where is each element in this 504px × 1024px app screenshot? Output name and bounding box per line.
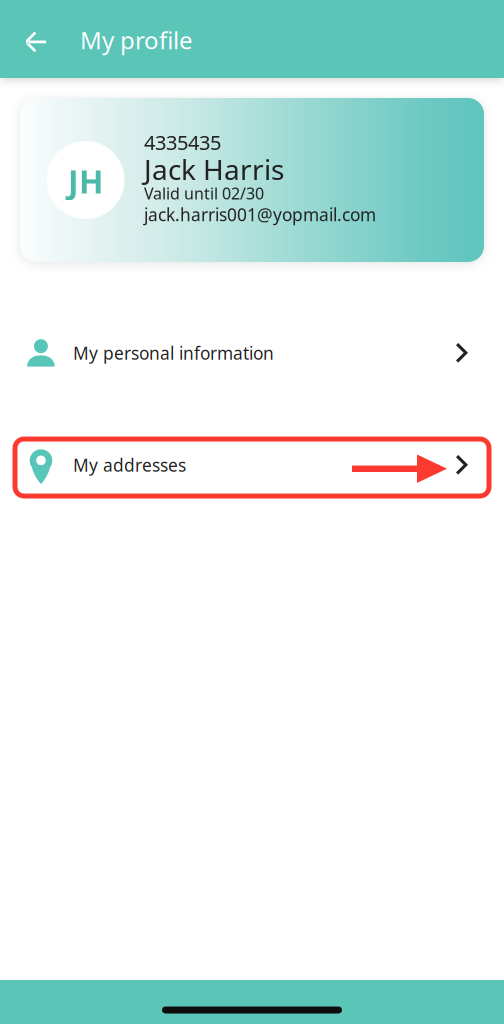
staticText: Valid until 02/30 [144,183,264,204]
staticText: 4335435 [144,129,221,156]
staticText: Jack Harris [144,151,284,188]
button[interactable]: My addresses [0,433,504,497]
button[interactable]: My personal information [0,321,504,385]
staticText: My personal information [73,341,274,364]
staticText: My profile [80,24,193,56]
staticText: jack.harris001@yopmail.com [144,203,376,226]
staticText: My addresses [73,453,186,476]
button[interactable]: Back [12,15,60,63]
staticText: JH [68,160,103,202]
